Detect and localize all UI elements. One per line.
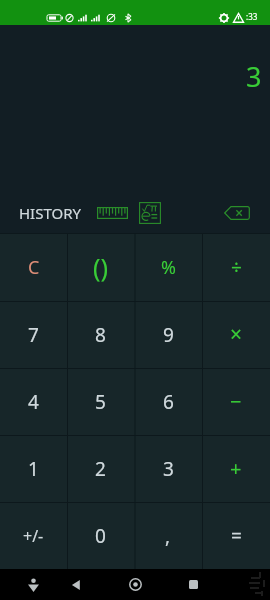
- button[interactable]: 0: [67, 502, 134, 569]
- button[interactable]: HISTORY: [11, 198, 90, 228]
- staticText: (): [93, 250, 109, 284]
- staticText: 9: [163, 322, 174, 348]
- staticText: HISTORY: [19, 203, 82, 223]
- button[interactable]: 9: [134, 301, 202, 368]
- staticText: C: [28, 255, 40, 280]
- button[interactable]: 3: [134, 435, 202, 502]
- staticText: 0: [95, 523, 106, 549]
- button[interactable]: 1: [0, 435, 67, 502]
- staticText: ,: [165, 523, 171, 549]
- button[interactable]: 7: [0, 301, 67, 368]
- staticText: 6: [163, 389, 174, 415]
- staticText: 4: [28, 389, 39, 415]
- button[interactable]: 4: [0, 368, 67, 435]
- button[interactable]: Hide keyboard: [16, 569, 50, 600]
- button[interactable]: ÷: [202, 233, 270, 301]
- button[interactable]: Back: [59, 569, 93, 600]
- staticText: =: [231, 523, 242, 549]
- button[interactable]: −: [202, 368, 270, 435]
- button[interactable]: %: [134, 233, 202, 301]
- button[interactable]: (): [67, 233, 134, 301]
- button[interactable]: ,: [134, 502, 202, 569]
- button[interactable]: ×: [202, 301, 270, 368]
- staticText: :33: [246, 11, 258, 22]
- staticText: 5: [95, 389, 106, 415]
- staticText: 2: [95, 456, 106, 482]
- button[interactable]: 8: [67, 301, 134, 368]
- staticText: ×: [230, 320, 243, 349]
- button[interactable]: +: [202, 435, 270, 502]
- staticText: 7: [28, 322, 39, 348]
- button[interactable]: Unit converter: [91, 197, 134, 228]
- button[interactable]: 2: [67, 435, 134, 502]
- staticText: %: [161, 255, 176, 280]
- button[interactable]: +/-: [0, 502, 67, 569]
- button[interactable]: Scientific mode: [134, 197, 165, 228]
- staticText: 3: [246, 58, 262, 95]
- staticText: +/-: [23, 525, 44, 547]
- button[interactable]: Backspace: [219, 197, 255, 228]
- staticText: 1: [28, 456, 39, 482]
- button[interactable]: =: [202, 502, 270, 569]
- staticText: ÷: [231, 254, 242, 280]
- staticText: −: [230, 388, 242, 415]
- staticText: 3: [163, 456, 174, 482]
- button[interactable]: 5: [67, 368, 134, 435]
- button[interactable]: 6: [134, 368, 202, 435]
- button[interactable]: Home: [118, 569, 152, 600]
- staticText: 8: [95, 322, 106, 348]
- button[interactable]: Recents: [176, 569, 210, 600]
- button[interactable]: C: [0, 233, 67, 301]
- staticText: +: [230, 455, 242, 482]
